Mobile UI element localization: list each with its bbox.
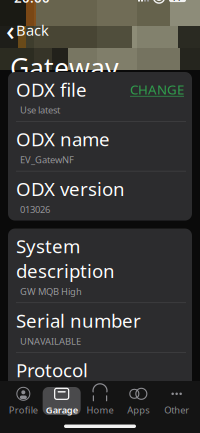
staticText: Other <box>164 404 189 416</box>
button[interactable]: Home <box>81 387 119 415</box>
staticText: System description <box>16 234 115 283</box>
staticText: Apps <box>127 404 149 416</box>
staticText: Garage <box>46 404 78 416</box>
staticText: GW MQB High <box>20 285 82 297</box>
staticText: ODX version <box>16 176 125 201</box>
staticText: Protocol <box>16 358 88 382</box>
staticText: UNAVAILABLE <box>20 335 81 347</box>
button[interactable]: Profile <box>4 387 42 415</box>
staticText: Use latest <box>20 104 60 116</box>
staticText: CAN: UDS <box>20 384 63 397</box>
staticText: Software number <box>16 407 169 432</box>
staticText: ODX name <box>16 127 110 151</box>
staticText: ODX file <box>16 77 87 102</box>
button[interactable]: Other <box>158 387 196 415</box>
staticText: Serial number <box>16 308 141 333</box>
staticText: Home <box>86 404 113 416</box>
staticText: 013026 <box>20 203 50 216</box>
staticText: Gateway <box>10 50 119 85</box>
staticText: 77 <box>172 0 182 3</box>
button[interactable]: ‹ <box>0 10 55 50</box>
staticText: Back <box>16 20 49 40</box>
staticText: 20:00 <box>14 0 50 6</box>
staticText: ‹ <box>6 12 15 48</box>
button[interactable]: Garage <box>43 387 81 415</box>
staticText: EV_GatewNF <box>20 153 74 166</box>
button[interactable]: Apps <box>119 387 157 415</box>
staticText: Profile <box>9 404 38 416</box>
staticText: CHANGE <box>130 80 184 98</box>
